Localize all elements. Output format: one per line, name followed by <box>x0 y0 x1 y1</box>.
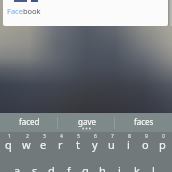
button[interactable]: a <box>9 158 26 172</box>
button[interactable]: 7 <box>103 132 120 158</box>
button[interactable]: g <box>77 158 94 172</box>
staticText: l <box>152 163 155 172</box>
button[interactable]: faces <box>115 113 172 132</box>
staticText: gave <box>78 116 96 127</box>
button[interactable]: d <box>43 158 60 172</box>
staticText: 1 <box>8 133 11 140</box>
button[interactable]: faced <box>0 113 58 132</box>
staticText: k <box>134 163 140 172</box>
button[interactable]: 0 <box>154 132 171 158</box>
button[interactable]: 9 <box>137 132 154 158</box>
staticText: r <box>58 137 63 152</box>
button[interactable]: j <box>111 158 128 172</box>
staticText: 9 <box>145 133 148 140</box>
staticText: y <box>92 137 98 152</box>
button[interactable]: 6 <box>86 132 103 158</box>
other: More suggestions <box>82 127 91 130</box>
button[interactable]: k <box>128 158 145 172</box>
staticText: g <box>82 163 89 172</box>
button[interactable]: 4 <box>52 132 69 158</box>
staticText: t <box>76 137 80 152</box>
staticText: u <box>108 137 115 152</box>
button[interactable]: gave <box>58 113 115 132</box>
staticText: f <box>67 163 71 172</box>
button[interactable]: Facebook <box>3 3 168 18</box>
staticText: w <box>22 137 31 152</box>
staticText: s <box>32 163 38 172</box>
staticText: faces <box>134 116 154 127</box>
staticText: e <box>40 137 47 152</box>
staticText: 5 <box>77 133 80 140</box>
staticText: 4 <box>60 133 63 140</box>
staticText: d <box>48 163 55 172</box>
button[interactable]: f <box>60 158 77 172</box>
staticText: j <box>118 163 121 172</box>
button[interactable]: 1 <box>0 132 17 158</box>
staticText: a <box>14 163 21 172</box>
staticText: Facebook <box>7 6 41 16</box>
staticText: 0 <box>162 133 165 140</box>
button[interactable] <box>3 0 168 3</box>
staticText: 2 <box>26 133 29 140</box>
staticText: faced <box>19 116 40 127</box>
button[interactable]: 5 <box>69 132 86 158</box>
button[interactable]: 3 <box>35 132 52 158</box>
button[interactable]: s <box>26 158 43 172</box>
button[interactable]: 2 <box>17 132 35 158</box>
staticText: 3 <box>43 133 46 140</box>
staticText: 7 <box>111 133 114 140</box>
staticText: q <box>5 137 12 152</box>
staticText: o <box>142 137 149 152</box>
button[interactable]: 8 <box>120 132 137 158</box>
staticText: p <box>159 137 166 152</box>
staticText: 6 <box>94 133 97 140</box>
staticText: 8 <box>128 133 131 140</box>
staticText: i <box>127 137 130 152</box>
button[interactable]: h <box>94 158 111 172</box>
button[interactable]: l <box>145 158 162 172</box>
staticText: h <box>99 163 106 172</box>
